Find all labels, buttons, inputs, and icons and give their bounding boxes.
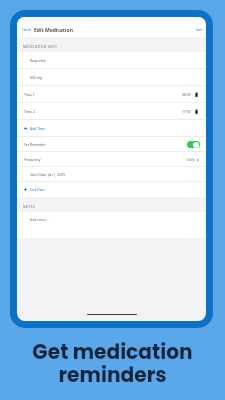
button[interactable]: Start Date: Jan 1, 2025 [17,167,206,182]
staticText: Cancel [22,28,32,32]
button[interactable]: Add Time [17,120,206,137]
staticText: NOTES [23,204,36,209]
button[interactable]: End Date [17,182,206,197]
other: Delete time [195,109,198,114]
button[interactable]: Time 1 [17,86,206,103]
button[interactable]: Ibuprofen [17,52,206,69]
button[interactable]: Time 2 [17,103,206,120]
staticText: Time 2 [24,109,35,114]
staticText: 08:00 [182,92,191,97]
staticText: Get medication reminders [32,338,193,389]
button[interactable]: Frequency [17,152,206,167]
button[interactable]: Add notes... [17,212,206,238]
button[interactable]: Save [196,23,206,37]
staticText: Save [196,28,203,32]
staticText: Set Reminder [24,142,46,147]
staticText: Frequency [24,157,41,162]
staticText: 400 mg [30,75,42,80]
staticText: Time 1 [24,92,35,97]
button[interactable]: Cancel [17,23,34,37]
other: Delete time [195,92,198,97]
button[interactable]: 400 mg [17,69,206,86]
staticText: Edit Medication [34,27,73,34]
staticText: MEDICATION INFO [23,44,57,49]
staticText: Add Time [30,126,46,131]
staticText: Ibuprofen [30,58,46,63]
staticText: 17:00 [182,109,191,114]
staticText: Daily [187,157,195,162]
staticText: Add notes... [30,217,49,222]
button[interactable]: Set Reminder [17,137,206,152]
staticText: End Date [30,187,45,192]
staticText: Start Date: Jan 1, 2025 [30,172,66,177]
